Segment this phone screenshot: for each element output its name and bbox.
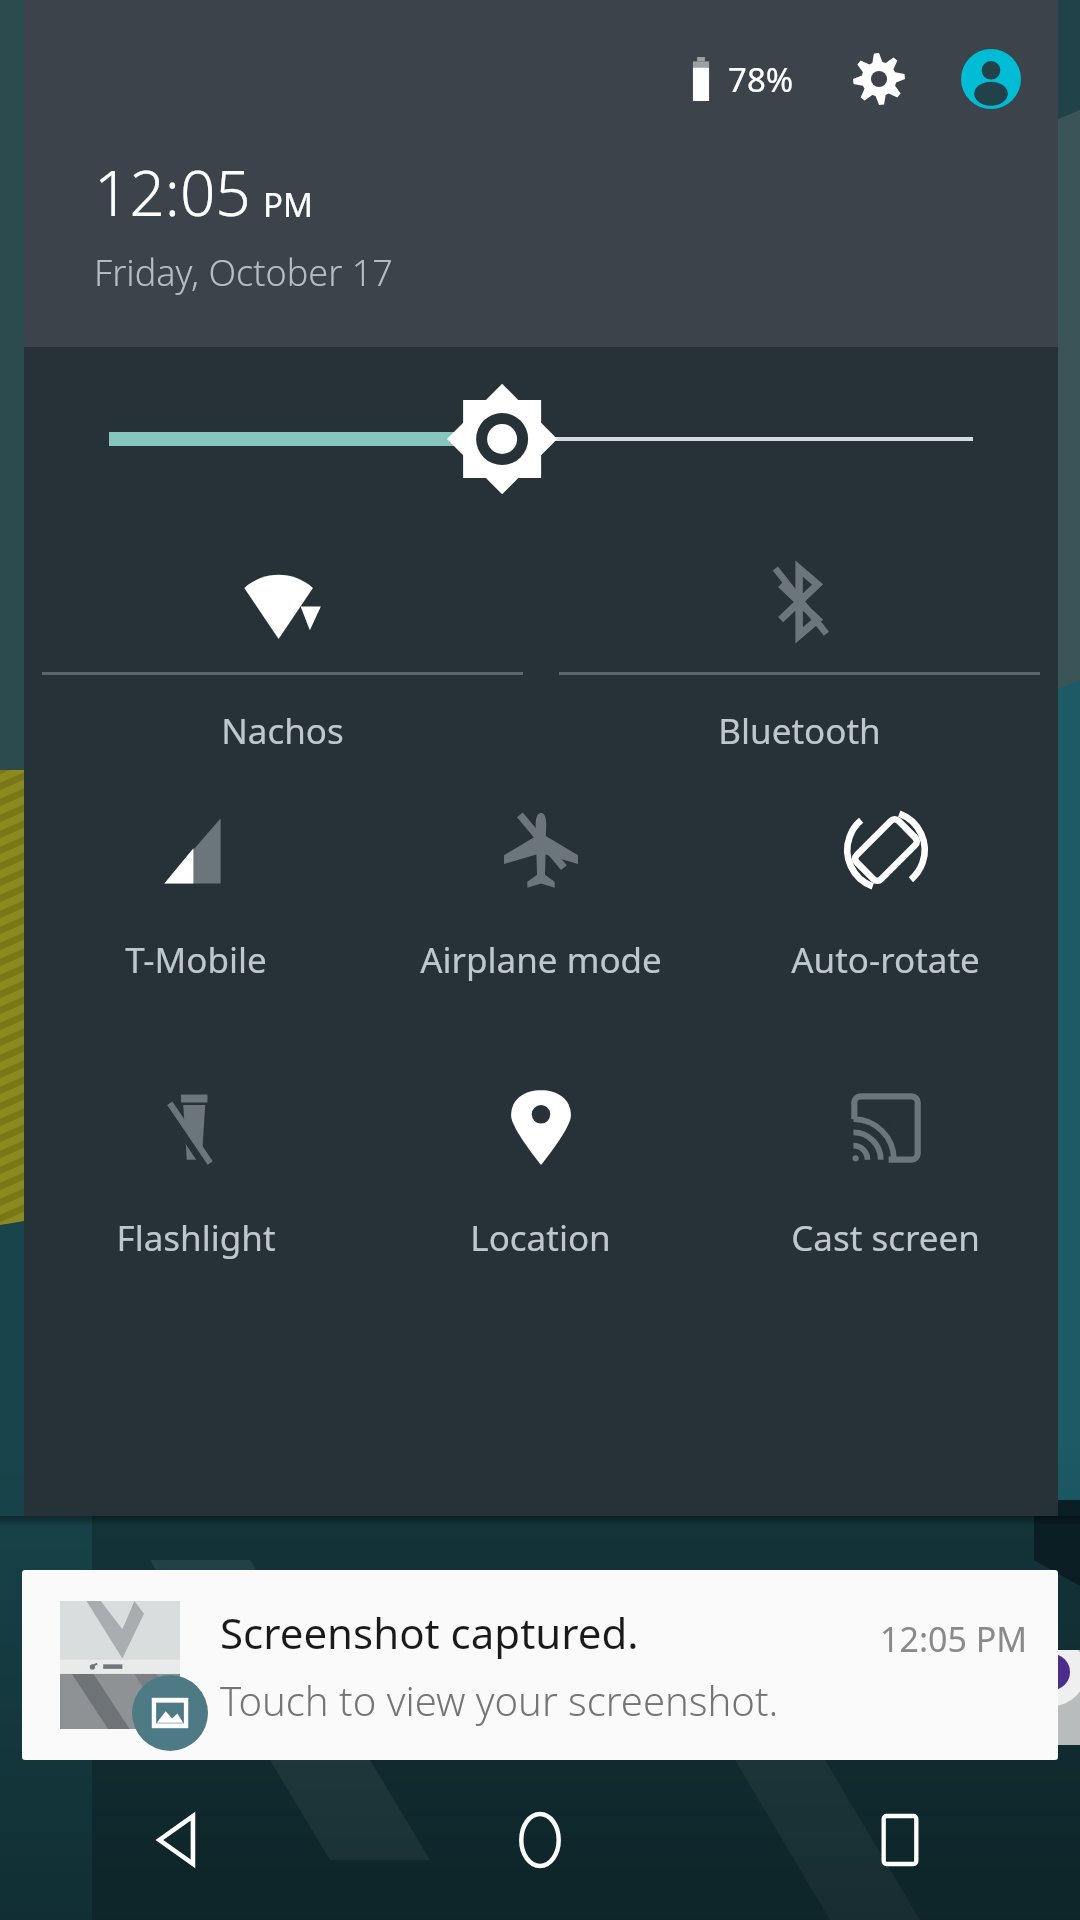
button[interactable]: Home — [360, 1760, 720, 1920]
button[interactable]: User profile — [960, 48, 1022, 110]
button[interactable]: Screenshot captured. — [22, 1570, 1058, 1760]
button[interactable]: Location — [368, 1070, 713, 1262]
button[interactable]: Airplane mode — [368, 792, 713, 984]
button[interactable]: T-Mobile — [24, 792, 368, 984]
staticText: 12:05 — [94, 150, 251, 234]
staticText: Bluetooth — [718, 707, 881, 755]
button[interactable]: Brightness — [24, 394, 1058, 484]
button[interactable]: Bluetooth — [541, 534, 1058, 755]
staticText: Touch to view your screenshot. — [220, 1673, 779, 1727]
button[interactable]: Auto-rotate — [713, 792, 1058, 984]
staticText: PM — [263, 182, 313, 227]
button[interactable]: Recent apps — [720, 1760, 1080, 1920]
button[interactable]: Flashlight — [24, 1070, 368, 1262]
staticText: Nachos — [221, 707, 344, 755]
staticText: Airplane mode — [420, 936, 662, 984]
staticText: Auto-rotate — [791, 936, 980, 984]
staticText: Location — [470, 1214, 611, 1262]
staticText: Flashlight — [116, 1214, 276, 1262]
button[interactable]: Nachos — [24, 534, 541, 755]
staticText: Cast screen — [791, 1214, 980, 1262]
staticText: T-Mobile — [125, 936, 267, 984]
button[interactable]: Cast screen — [713, 1070, 1058, 1262]
button[interactable]: Settings — [850, 50, 908, 108]
staticText: 12:05 PM — [880, 1616, 1028, 1662]
staticText: Friday, October 17 — [94, 248, 393, 297]
staticText: Screenshot captured. — [220, 1604, 639, 1661]
staticText: 78% — [728, 57, 794, 102]
button[interactable]: Back — [0, 1760, 360, 1920]
